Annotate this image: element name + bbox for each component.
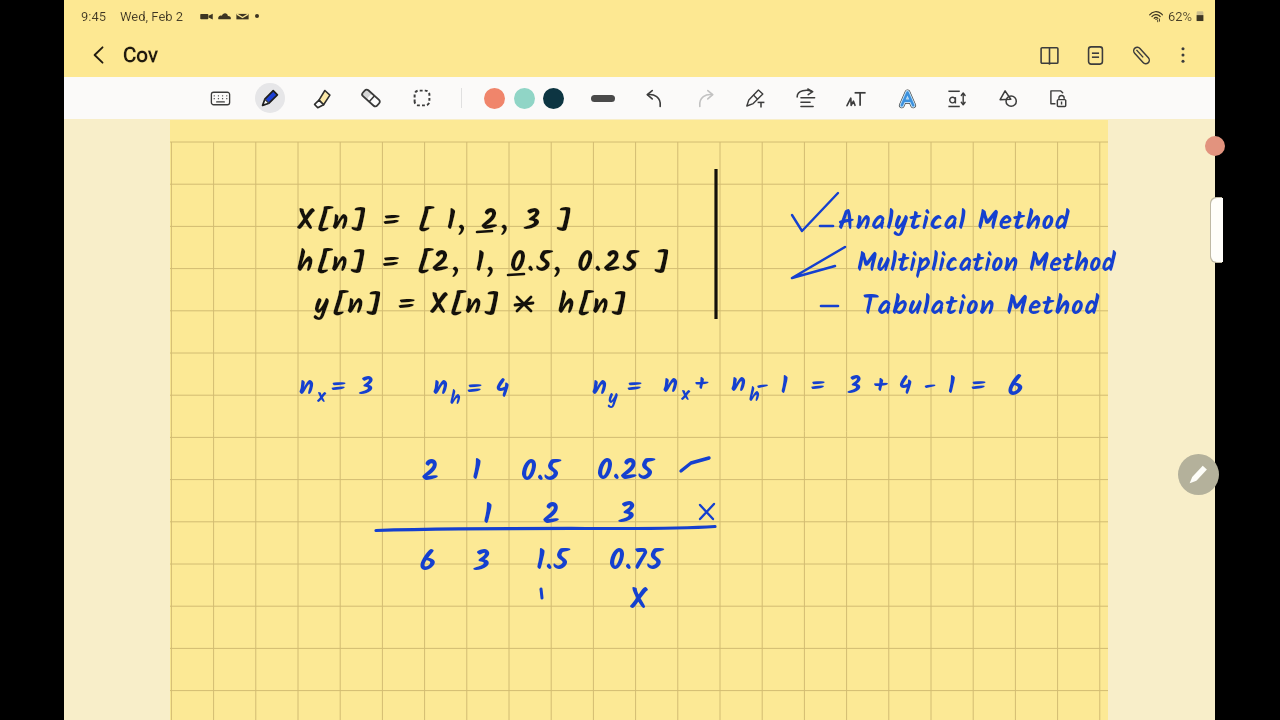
staticText: h: [749, 381, 760, 411]
button[interactable]: Eraser: [350, 77, 392, 119]
staticText: 9:45: [81, 9, 107, 24]
staticText: Tabulation Method: [862, 285, 1100, 328]
staticText: 6: [1008, 365, 1024, 410]
staticText: 3: [474, 539, 490, 585]
button[interactable]: Keyboard: [199, 77, 241, 119]
staticText: h: [450, 384, 461, 414]
button[interactable]: Indent: [784, 77, 826, 119]
staticText: y: [608, 383, 618, 413]
button[interactable]: Text size: [936, 77, 978, 119]
staticText: - 1 = 3 + 4 - 1: [756, 367, 957, 405]
button[interactable]: Lock: [1037, 77, 1079, 119]
staticText: +: [694, 367, 708, 404]
button[interactable]: Back: [77, 33, 121, 77]
staticText: 2: [422, 449, 439, 495]
staticText: 2: [543, 492, 560, 538]
staticText: = 4: [466, 369, 511, 409]
button[interactable]: Handwriting to text: [835, 77, 877, 119]
staticText: 0.75: [609, 538, 664, 584]
staticText: Analytical Method: [838, 200, 1071, 243]
button[interactable]: Undo: [633, 77, 675, 119]
button[interactable]: Text highlight: [886, 77, 928, 119]
staticText: X: [630, 577, 647, 623]
staticText: h[n]: [558, 282, 629, 328]
staticText: x: [681, 380, 691, 410]
staticText: Wed, Feb 2: [120, 9, 184, 24]
button[interactable]: Highlighter: [300, 77, 342, 119]
staticText: 0.25: [597, 448, 655, 494]
button[interactable]: Book view: [1029, 35, 1069, 75]
button[interactable]: Attach: [1121, 35, 1161, 75]
staticText: 62%: [1168, 9, 1193, 24]
staticText: 1.5: [536, 538, 570, 584]
button[interactable]: Pen: [255, 83, 285, 113]
staticText: n: [299, 365, 314, 408]
button[interactable]: Shapes: [987, 77, 1029, 119]
staticText: X[n]: [430, 282, 502, 328]
button[interactable]: Note: [1075, 35, 1115, 75]
staticText: n: [433, 365, 448, 408]
staticText: h[n] = [2, 1, 0.5, 0.25 ]: [297, 240, 672, 286]
staticText: 1: [472, 448, 481, 494]
staticText: y[n] =: [314, 282, 419, 328]
staticText: 1: [483, 492, 492, 538]
button[interactable]: Colour: [503, 77, 545, 119]
staticText: 6: [420, 539, 436, 585]
staticText: n: [663, 363, 678, 406]
staticText: x: [317, 382, 327, 412]
staticText: X[n] = [ 1, 2, 3 ]: [297, 198, 574, 244]
staticText: n: [731, 362, 746, 405]
button[interactable]: More options: [1163, 35, 1203, 75]
staticText: n: [592, 365, 607, 408]
staticText: =: [626, 367, 643, 407]
staticText: Multiplication Method: [857, 243, 1117, 284]
button[interactable]: Stroke width: [582, 77, 624, 119]
staticText: Cov: [123, 43, 158, 67]
button[interactable]: Colour: [532, 77, 574, 119]
button[interactable]: Edit: [1178, 454, 1219, 495]
staticText: = 3: [330, 367, 375, 407]
button[interactable]: Pen to text: [735, 77, 777, 119]
button[interactable]: Redo: [684, 77, 726, 119]
button[interactable]: Select: [401, 77, 443, 119]
staticText: =: [970, 366, 987, 406]
button[interactable]: Colour: [473, 77, 515, 119]
staticText: 0.5: [521, 449, 561, 495]
staticText: 3: [619, 491, 635, 537]
